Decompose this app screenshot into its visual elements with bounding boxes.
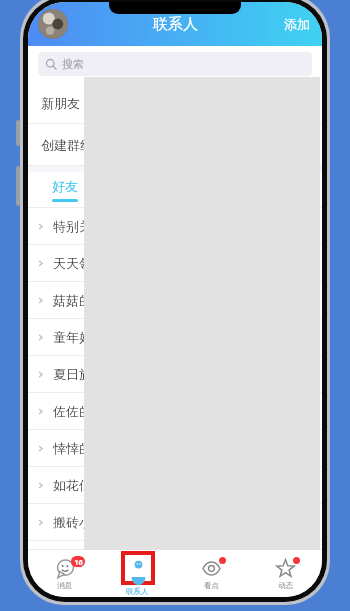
staticText: 特别关心 — [53, 218, 105, 234]
staticText: 消息 — [57, 581, 72, 590]
button[interactable]: 创建群组 — [28, 124, 322, 165]
button[interactable]: 新朋友 — [28, 82, 322, 123]
button[interactable]: 天天领红包 — [28, 245, 322, 281]
staticText: 联系人 — [126, 587, 149, 596]
button[interactable]: 童年好友 — [28, 319, 322, 355]
button[interactable]: 搜索 — [38, 52, 312, 76]
staticText: 童年好友 — [53, 329, 105, 345]
button[interactable]: 如花似玉 — [28, 467, 322, 503]
button[interactable]: 联系人 — [101, 549, 174, 597]
staticText: 联系人 — [153, 15, 198, 34]
staticText: 悻悻的同事 — [53, 440, 118, 456]
button[interactable]: 添加 — [272, 8, 322, 40]
button[interactable]: 特别关心 — [28, 208, 322, 244]
staticText: 佐佐的同学 — [53, 403, 118, 419]
staticText: 动态 — [278, 581, 293, 590]
button[interactable]: 菇菇的朋友 — [28, 282, 322, 318]
staticText: 如花似玉 — [53, 477, 105, 493]
button[interactable]: 16 — [28, 549, 101, 597]
button[interactable]: 好友 — [28, 172, 102, 208]
staticText: 搜索 — [62, 57, 84, 71]
button[interactable]: 看点 — [174, 549, 248, 597]
button[interactable]: 搬砖小分队 — [28, 504, 322, 540]
staticText: 搬砖小分队 — [53, 514, 118, 530]
staticText: 菇菇的朋友 — [53, 292, 118, 308]
button[interactable]: 佐佐的同学 — [28, 393, 322, 429]
staticText: 好友 — [52, 178, 78, 194]
button[interactable]: 管理 — [274, 183, 322, 198]
staticText: 天天领红包 — [53, 255, 118, 271]
button[interactable]: 悻悻的同事 — [28, 430, 322, 466]
staticText: 看点 — [204, 581, 219, 590]
button[interactable]: Profile — [38, 9, 68, 39]
staticText: 16 — [74, 557, 83, 567]
staticText: 新朋友 — [41, 95, 80, 111]
staticText: 创建群组 — [41, 137, 93, 153]
staticText: 添加 — [284, 16, 310, 32]
staticText: 夏日旅行团 — [53, 366, 118, 382]
button[interactable]: 动态 — [248, 549, 322, 597]
button[interactable]: 夏日旅行团 — [28, 356, 322, 392]
